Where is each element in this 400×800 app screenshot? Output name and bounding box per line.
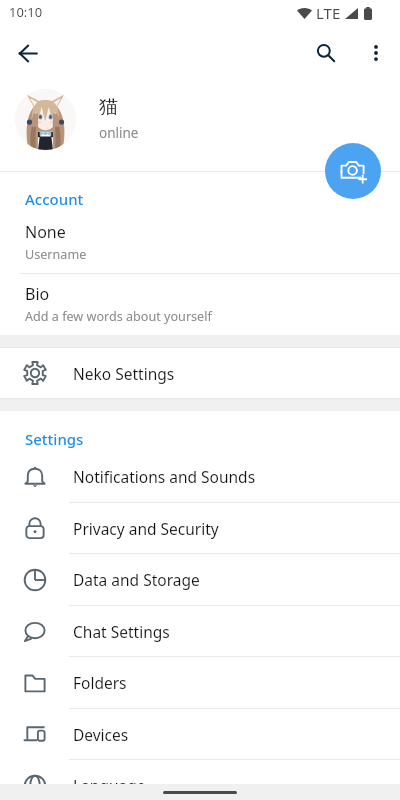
- button[interactable]: Bio: [0, 274, 400, 335]
- button[interactable]: Back: [7, 32, 49, 74]
- button[interactable]: None: [0, 212, 400, 273]
- staticText: Add a few words about yourself: [25, 308, 212, 325]
- staticText: LTE: [316, 3, 341, 23]
- staticText: online: [99, 124, 139, 142]
- button[interactable]: Privacy and Security: [0, 503, 400, 553]
- staticText: Language: [73, 775, 146, 796]
- button[interactable]: Folders: [0, 657, 400, 708]
- button[interactable]: Devices: [0, 709, 400, 759]
- staticText: Username: [25, 246, 87, 263]
- button[interactable]: Data and Storage: [0, 554, 400, 605]
- staticText: None: [25, 221, 66, 243]
- staticText: Settings: [25, 429, 84, 449]
- button[interactable]: Notifications and Sounds: [0, 451, 400, 502]
- staticText: 10:10: [9, 3, 43, 21]
- staticText: Account: [25, 189, 84, 209]
- button[interactable]: More options: [356, 33, 396, 73]
- button[interactable]: Language: [0, 760, 400, 800]
- button[interactable]: Neko Settings: [0, 348, 400, 398]
- button[interactable]: Set profile photo: [325, 143, 381, 199]
- staticText: 猫: [99, 95, 118, 119]
- staticText: Neko Settings: [73, 363, 175, 384]
- button[interactable]: Chat Settings: [0, 606, 400, 656]
- staticText: Chat Settings: [73, 621, 170, 642]
- staticText: Data and Storage: [73, 569, 200, 590]
- staticText: Devices: [73, 724, 129, 745]
- staticText: Notifications and Sounds: [73, 466, 256, 487]
- staticText: Bio: [25, 283, 50, 305]
- staticText: Privacy and Security: [73, 518, 219, 539]
- staticText: Folders: [73, 672, 127, 693]
- button[interactable]: 猫: [0, 78, 400, 171]
- button[interactable]: Search: [304, 31, 348, 75]
